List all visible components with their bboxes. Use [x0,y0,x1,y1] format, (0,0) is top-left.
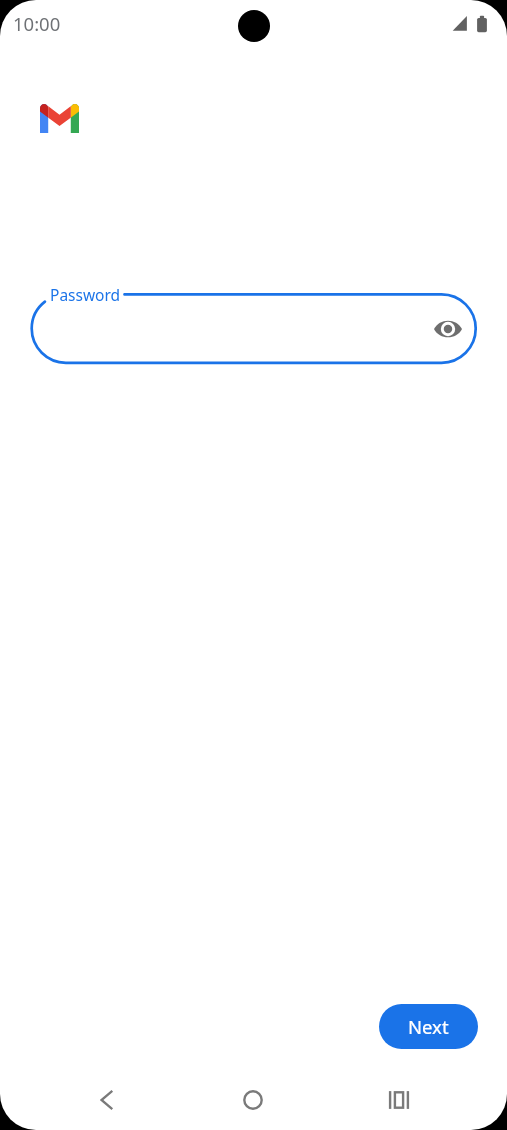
button[interactable]: Next [379,1004,478,1049]
button[interactable]: Show password [425,306,471,352]
staticText: Password [50,284,121,305]
button[interactable]: Recent apps [369,1070,429,1130]
button[interactable]: Password [30,293,477,364]
button[interactable]: Home [223,1070,283,1130]
staticText: Next [408,1014,449,1039]
staticText: 10:00 [13,11,61,36]
button[interactable]: Back [77,1070,137,1130]
